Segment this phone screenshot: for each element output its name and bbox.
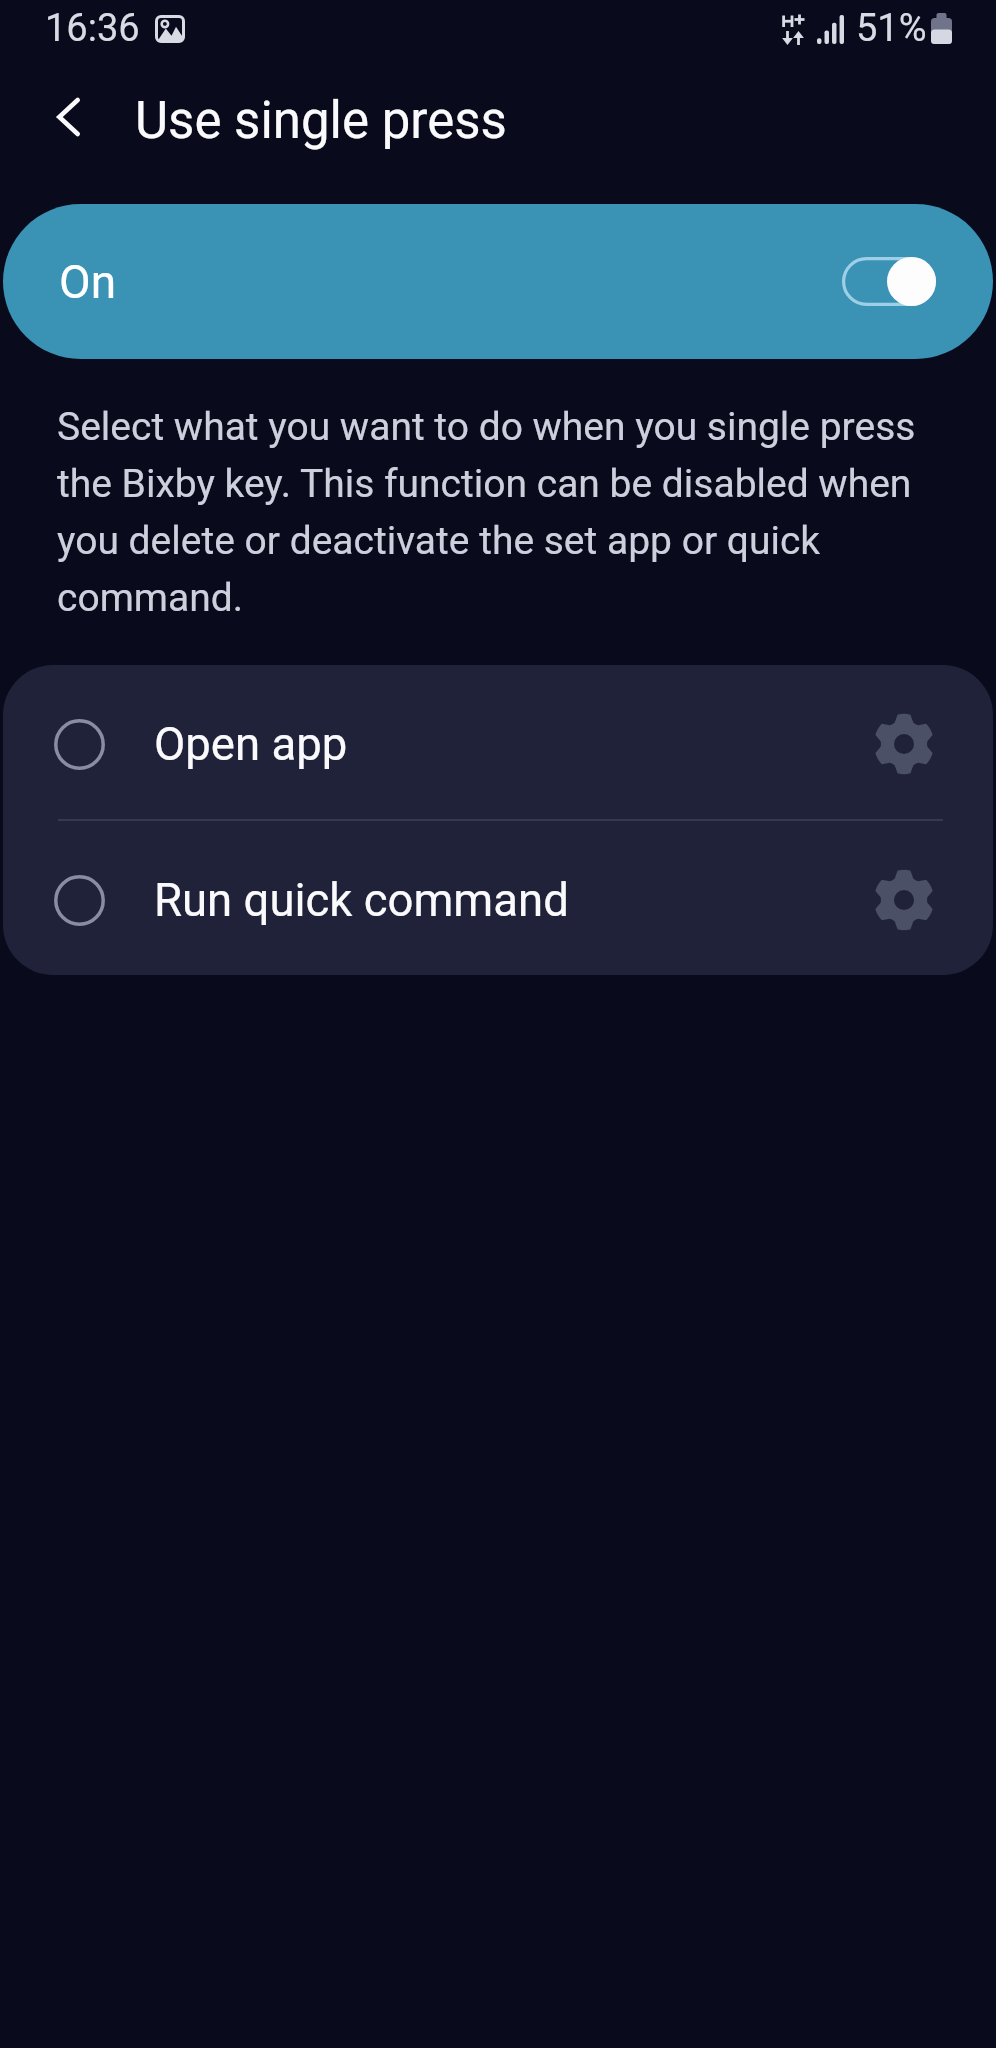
staticText: 16:36 (45, 6, 140, 51)
staticText: Use single press (135, 91, 507, 151)
button[interactable]: Navigate up (20, 72, 116, 168)
staticText: On (59, 255, 117, 309)
button[interactable]: On (3, 204, 993, 359)
staticText: 51% (856, 6, 927, 51)
button[interactable]: Open app (3, 665, 993, 819)
staticText: Run quick command (154, 874, 569, 927)
staticText: Open app (154, 718, 348, 771)
button[interactable]: Open app settings (852, 690, 956, 794)
staticText: Select what you want to do when you sing… (57, 395, 930, 623)
button[interactable]: Run quick command settings (852, 846, 956, 950)
button[interactable]: Run quick command (3, 821, 993, 975)
